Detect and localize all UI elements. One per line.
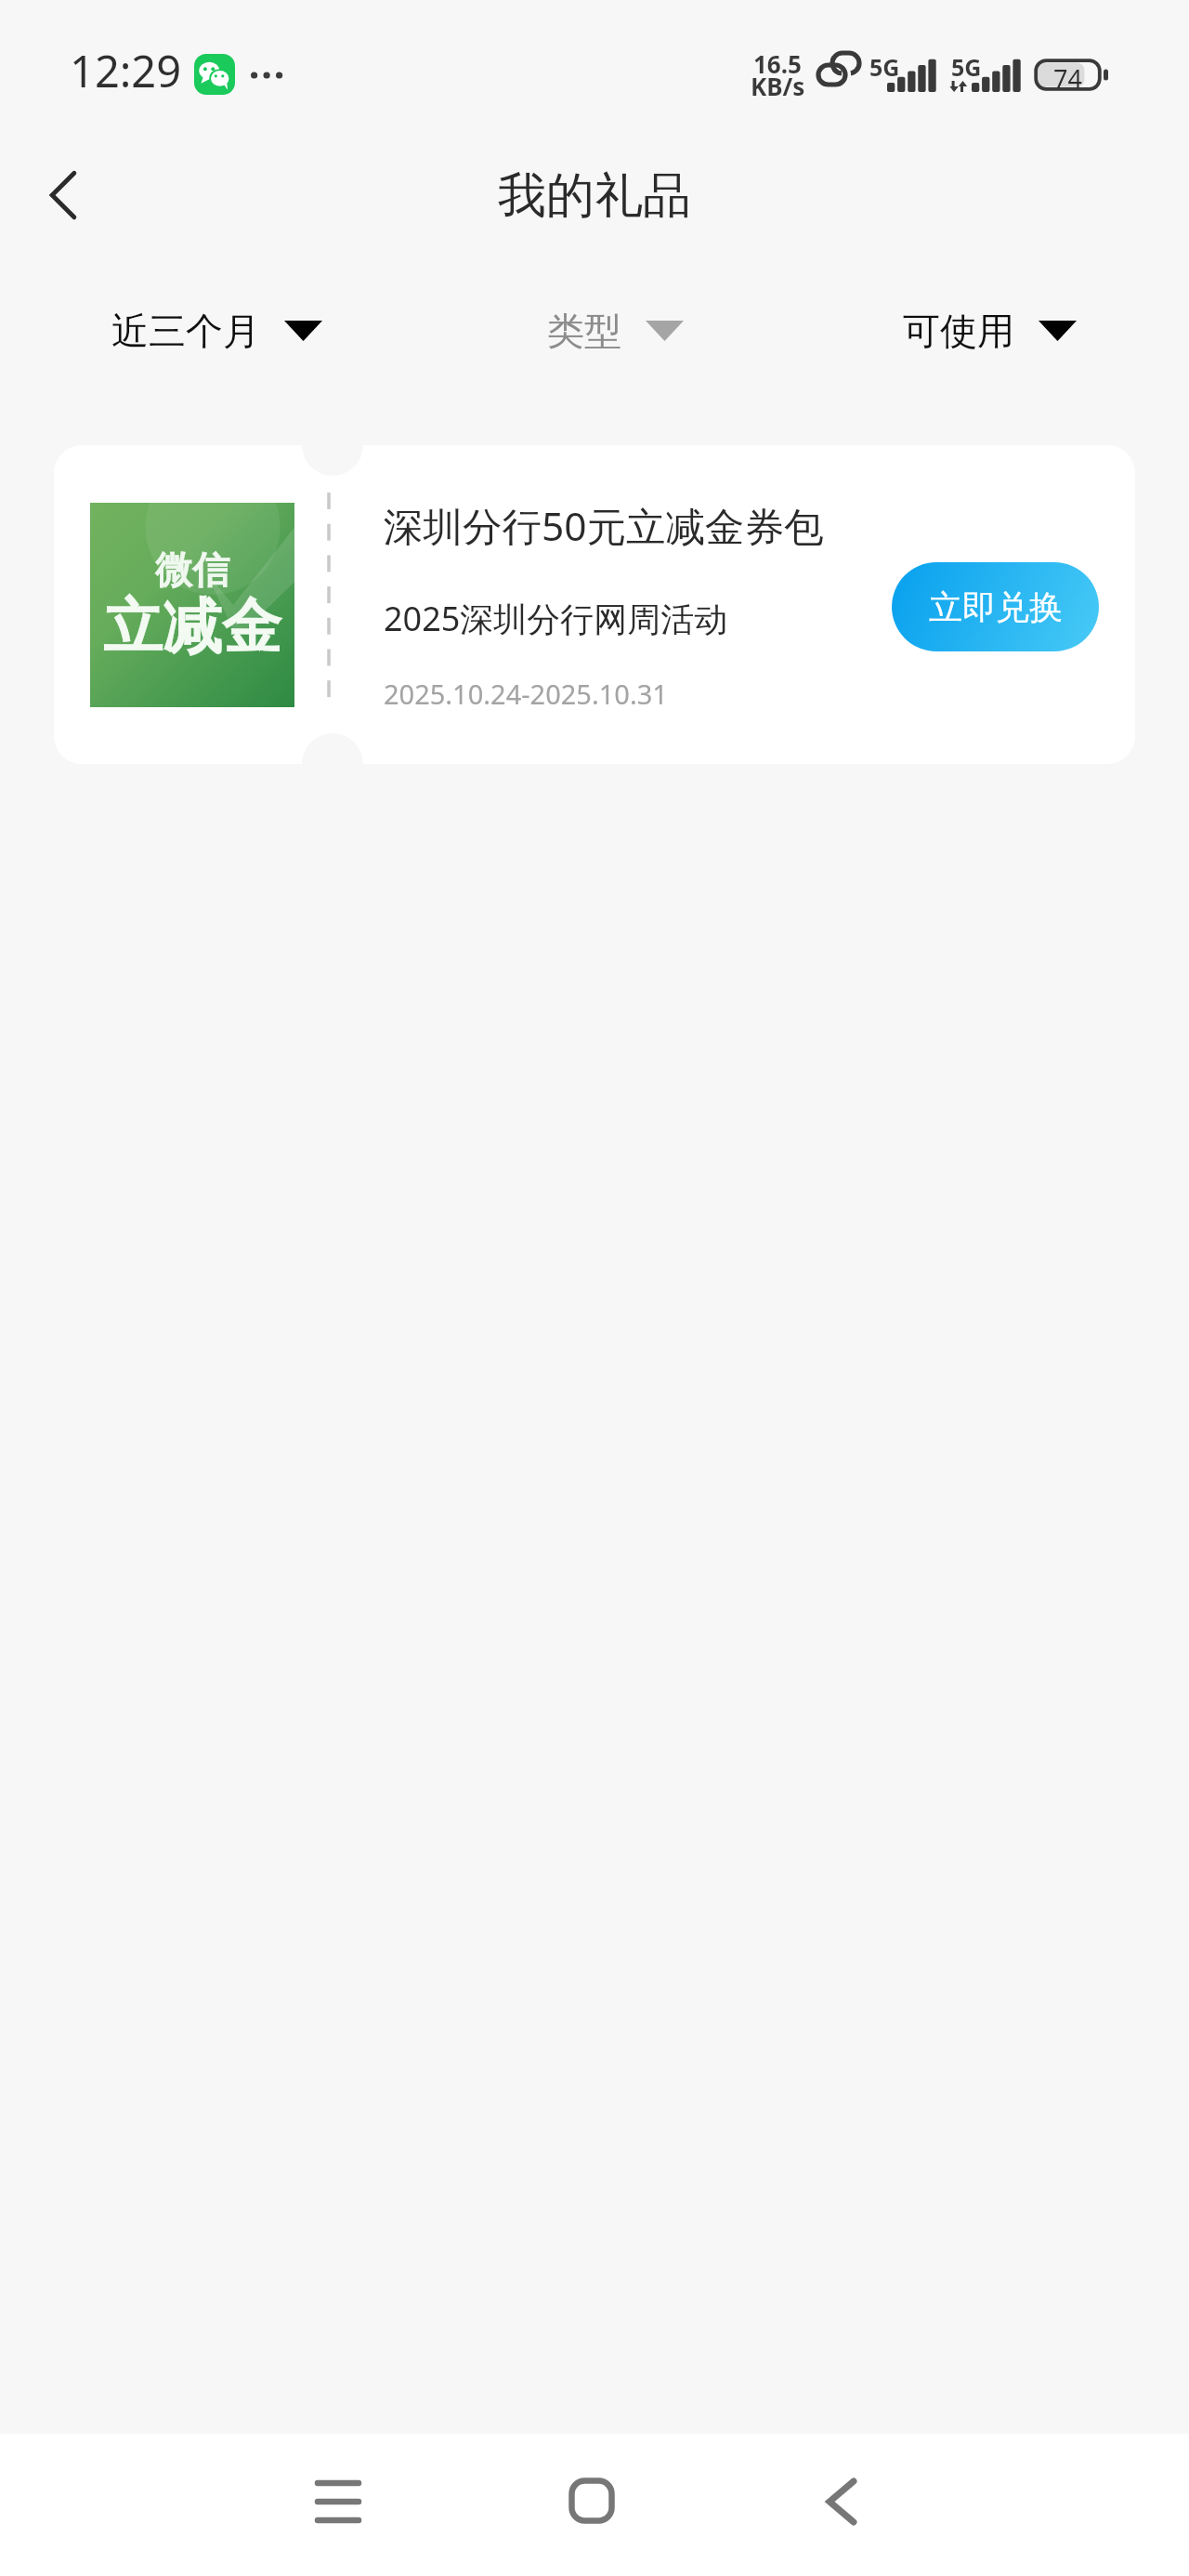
staticText: 立即兑换 <box>929 586 1063 628</box>
staticText: 74 <box>1053 61 1082 95</box>
button[interactable]: 类型 <box>547 280 684 382</box>
staticText: 可使用 <box>903 308 1014 354</box>
staticText: 16.5 <box>753 47 802 80</box>
staticText: 2025.10.24-2025.10.31 <box>384 676 668 712</box>
button[interactable]: Back <box>7 139 119 251</box>
staticText: 5G <box>951 51 982 83</box>
staticText: 微信 <box>155 546 229 593</box>
button[interactable]: Home <box>527 2454 657 2547</box>
button[interactable]: Recent apps <box>273 2455 403 2548</box>
staticText: 近三个月 <box>111 308 260 354</box>
button[interactable]: 微信 <box>54 445 1135 764</box>
staticText: 深圳分行50元立减金券包 <box>384 499 824 553</box>
staticText: KB/s <box>751 70 805 102</box>
button[interactable]: 近三个月 <box>111 280 322 382</box>
staticText: 2025深圳分行网周活动 <box>384 596 728 641</box>
button[interactable]: 可使用 <box>903 280 1077 382</box>
staticText: 立减金 <box>103 589 281 664</box>
staticText: 我的礼品 <box>498 165 691 227</box>
staticText: 12:29 <box>70 41 182 100</box>
button[interactable]: 立即兑换 <box>892 562 1099 651</box>
staticText: 类型 <box>547 308 621 354</box>
staticText: 5G <box>869 51 900 83</box>
button[interactable]: Back <box>776 2455 906 2548</box>
